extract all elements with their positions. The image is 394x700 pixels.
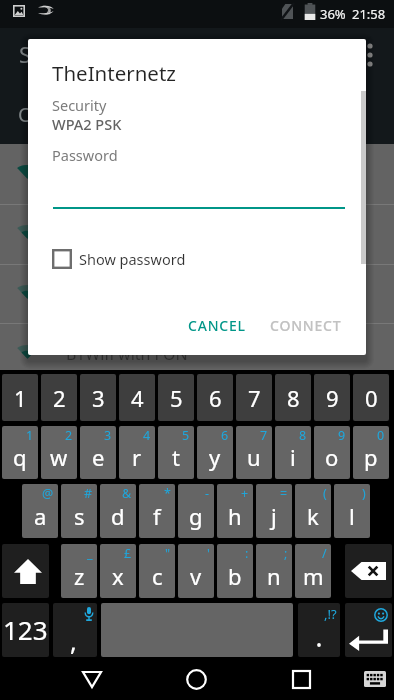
staticText: 8 xyxy=(287,383,300,413)
staticText: Password xyxy=(52,145,118,165)
staticText: @ xyxy=(42,485,54,502)
button[interactable]: 3 xyxy=(80,374,116,421)
button[interactable]: 8 xyxy=(275,426,311,479)
staticText: 0 xyxy=(365,383,378,413)
staticText: : xyxy=(245,545,249,562)
staticText: " xyxy=(165,545,171,562)
staticText: 0 xyxy=(377,427,385,444)
staticText: 2 xyxy=(65,427,73,444)
button[interactable]: 3 xyxy=(80,426,116,479)
staticText: y xyxy=(209,442,221,472)
staticText: c xyxy=(152,561,163,591)
button[interactable]: Period, punctuation xyxy=(298,603,340,657)
button[interactable]: 2 xyxy=(41,374,77,421)
staticText: f xyxy=(153,501,161,531)
staticText: On xyxy=(18,101,46,128)
button[interactable]: ( xyxy=(295,484,331,538)
button[interactable]: : xyxy=(217,544,253,598)
button[interactable]: Home xyxy=(175,659,218,699)
button[interactable]: / xyxy=(295,544,331,598)
button[interactable]: 1 xyxy=(2,374,38,421)
staticText: u xyxy=(247,442,261,472)
button[interactable]: * xyxy=(139,484,175,538)
button[interactable]: 5 xyxy=(158,426,194,479)
staticText: 36% xyxy=(320,5,346,23)
staticText: Settings xyxy=(19,39,103,69)
staticText: 6 xyxy=(221,427,229,444)
staticText: 4 xyxy=(143,427,151,444)
staticText: j xyxy=(271,501,277,531)
button[interactable]: £ xyxy=(100,544,136,598)
staticText: 5 xyxy=(182,427,190,444)
button[interactable]: ' xyxy=(178,544,214,598)
button[interactable]: + xyxy=(217,484,253,538)
button[interactable]: & xyxy=(100,484,136,538)
button[interactable]: 123 xyxy=(2,603,49,657)
staticText: 9 xyxy=(338,427,346,444)
button[interactable]: Show password xyxy=(52,249,186,269)
button[interactable]: Shift xyxy=(2,544,49,598)
staticText: z xyxy=(74,561,85,591)
button[interactable]: 9 xyxy=(314,426,350,479)
button[interactable]: = xyxy=(256,484,292,538)
button[interactable]: 0 xyxy=(353,374,389,421)
button[interactable]: # xyxy=(61,484,97,538)
staticText: ) xyxy=(362,485,366,502)
button[interactable]: 7 xyxy=(236,426,272,479)
staticText: q xyxy=(13,442,27,472)
staticText: BTWifi with FON xyxy=(66,343,188,365)
button[interactable]: - xyxy=(178,484,214,538)
button[interactable]: @ xyxy=(22,484,58,538)
button[interactable]: " xyxy=(139,544,175,598)
button[interactable]: Enter xyxy=(345,603,392,657)
button[interactable]: 6 xyxy=(197,374,233,421)
button[interactable]: Wlan_AP2 xyxy=(0,144,394,204)
button[interactable]: BTWifi with FON xyxy=(0,324,394,384)
button[interactable]: 8 xyxy=(275,374,311,421)
button[interactable]: 5 xyxy=(158,374,194,421)
staticText: 3 xyxy=(92,383,105,413)
button[interactable]: Recents xyxy=(280,659,323,699)
button[interactable]: 7 xyxy=(236,374,272,421)
button[interactable]: Backspace xyxy=(345,544,392,598)
button[interactable]: 4 xyxy=(119,374,155,421)
staticText: # xyxy=(84,485,93,502)
staticText: ( xyxy=(323,485,327,502)
button[interactable]: CANCEL xyxy=(180,307,254,344)
staticText: v xyxy=(190,561,202,591)
staticText: 2 xyxy=(53,383,66,413)
button[interactable]: 4 xyxy=(119,426,155,479)
staticText: 9 xyxy=(326,383,339,413)
staticText: o xyxy=(325,442,339,472)
staticText: 7 xyxy=(248,383,261,413)
button[interactable]: Keyboard xyxy=(355,659,394,699)
button[interactable]: 0 xyxy=(353,426,389,479)
button[interactable]: _ xyxy=(61,544,97,598)
button[interactable]: ) xyxy=(334,484,370,538)
staticText: / xyxy=(322,545,327,562)
staticText: p xyxy=(364,442,378,472)
staticText: 6 xyxy=(209,383,222,413)
button[interactable]: Back xyxy=(70,659,113,699)
button[interactable]: BTWiFi-X xyxy=(0,264,394,324)
staticText: & xyxy=(122,485,132,502)
staticText: 5 xyxy=(170,383,183,413)
button[interactable]: 6 xyxy=(197,426,233,479)
button[interactable]: ; xyxy=(256,544,292,598)
staticText: a xyxy=(34,501,47,531)
button[interactable]: 2 xyxy=(41,426,77,479)
button[interactable]: Comma, voice input xyxy=(53,603,97,657)
button[interactable]: FRITZ!Box 7490 xyxy=(0,204,394,264)
staticText: 21:58 xyxy=(352,5,386,23)
staticText: Show password xyxy=(79,249,186,269)
button[interactable]: 9 xyxy=(314,374,350,421)
staticText: = xyxy=(280,485,288,502)
staticText: l xyxy=(349,501,355,531)
button[interactable]: CONNECT xyxy=(262,307,350,344)
staticText: x xyxy=(112,561,124,591)
button[interactable]: 1 xyxy=(2,426,38,479)
staticText: i xyxy=(290,442,296,472)
